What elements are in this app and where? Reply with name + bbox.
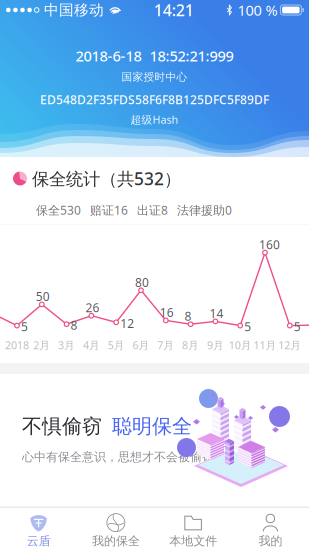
staticText: 16 [160, 304, 174, 320]
staticText: 本地文件 [169, 534, 217, 548]
staticText: 2月 [33, 338, 50, 352]
staticText: 法律援助0 [177, 202, 232, 218]
staticText: 12月 [278, 338, 301, 352]
button[interactable]: 我的保全 [77, 508, 154, 550]
staticText: 80 [135, 274, 149, 290]
staticText: 不惧偷窃 [22, 414, 102, 439]
button[interactable]: 我的 [232, 508, 309, 550]
staticText: 3月 [58, 338, 75, 352]
staticText: 我的保全 [92, 534, 140, 548]
staticText: 我的 [258, 534, 282, 548]
staticText: 5月 [108, 338, 125, 352]
staticText: 保全530 [36, 202, 81, 218]
staticText: 5 [294, 319, 301, 334]
staticText: 聪明保全 [112, 414, 192, 439]
staticText: 6月 [132, 338, 149, 352]
staticText: 11月 [253, 338, 276, 352]
staticText: 2018 [5, 338, 29, 352]
staticText: 26 [85, 300, 99, 316]
staticText: 8月 [182, 338, 199, 352]
staticText: ED548D2F35FDS58F6F8B125DFC5F89DF [40, 92, 269, 107]
staticText: 100 % [237, 0, 277, 20]
staticText: 心中有保全意识，思想才不会被偷窃 [22, 450, 214, 464]
staticText: 12 [120, 315, 134, 331]
staticText: 中国移动 [44, 1, 104, 19]
staticText: 国家授时中心 [121, 70, 187, 84]
staticText: 出证8 [137, 202, 168, 218]
staticText: 保全统计（共532） [32, 167, 181, 190]
staticText: 8 [185, 308, 192, 324]
button[interactable]: 不惧偷窃 [0, 374, 309, 506]
staticText: 4月 [83, 338, 100, 352]
staticText: 云盾 [27, 534, 51, 548]
button[interactable]: 云盾 [0, 508, 77, 550]
staticText: 2018-6-18 18:52:21:999 [75, 46, 233, 65]
staticText: 5 [244, 319, 251, 334]
staticText: 14:21 [154, 0, 194, 21]
staticText: 5 [21, 319, 28, 334]
staticText: 赔证16 [90, 202, 128, 218]
button[interactable]: 本地文件 [154, 508, 232, 550]
staticText: 超级Hash [130, 112, 178, 127]
staticText: 50 [36, 288, 50, 304]
staticText: 8 [71, 317, 78, 333]
staticText: 14 [209, 305, 223, 321]
staticText: 9月 [207, 338, 224, 352]
staticText: 10月 [229, 338, 252, 352]
staticText: 7月 [157, 338, 174, 352]
staticText: 160 [259, 237, 280, 252]
